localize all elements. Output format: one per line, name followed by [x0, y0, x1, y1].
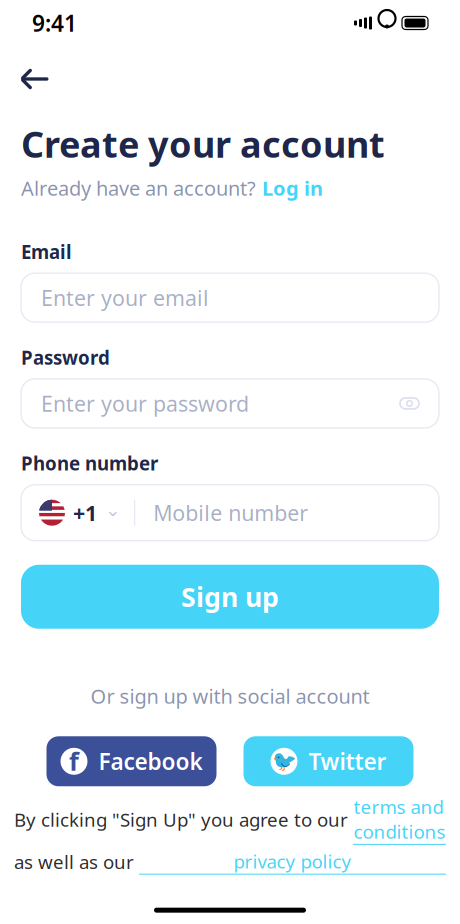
button[interactable]: 🐦 [243, 736, 413, 786]
button[interactable]: Back [13, 62, 57, 96]
staticText: f [69, 744, 79, 778]
button[interactable]: Mobile number [135, 485, 439, 541]
staticText: as well as our [14, 849, 139, 874]
staticText: Log in [262, 175, 323, 201]
button[interactable]: Enter your password [21, 379, 439, 428]
button[interactable]: f [46, 736, 216, 786]
staticText: privacy policy [233, 849, 351, 874]
button[interactable]: terms and conditions [353, 794, 446, 845]
staticText: Enter your password [41, 389, 249, 418]
staticText: Email [21, 239, 72, 264]
staticText: Create your account [21, 120, 385, 168]
staticText: Already have an account? [21, 175, 256, 201]
staticText: 🐦 [271, 750, 296, 773]
staticText: Enter your email [41, 283, 209, 312]
staticText: By clicking "Sign Up" you agree to our [14, 807, 353, 832]
staticText: terms and conditions [353, 794, 445, 844]
staticText: Password [21, 345, 110, 370]
button[interactable]: Sign up [21, 565, 439, 629]
staticText: Phone number [21, 451, 158, 476]
staticText: Mobile number [153, 499, 308, 527]
staticText: Or sign up with social account [90, 683, 369, 709]
staticText: Facebook [98, 746, 202, 776]
staticText: +1 [73, 499, 97, 527]
staticText: ⌄ [105, 499, 121, 520]
staticText: Sign up [181, 579, 279, 614]
staticText: Twitter [308, 746, 386, 776]
button[interactable]: privacy policy [139, 849, 446, 875]
button[interactable]: Log in [262, 175, 323, 201]
button[interactable]: Enter your email [21, 273, 439, 322]
staticText: 9:41 [32, 8, 77, 38]
button[interactable]: Select country code [21, 485, 134, 541]
